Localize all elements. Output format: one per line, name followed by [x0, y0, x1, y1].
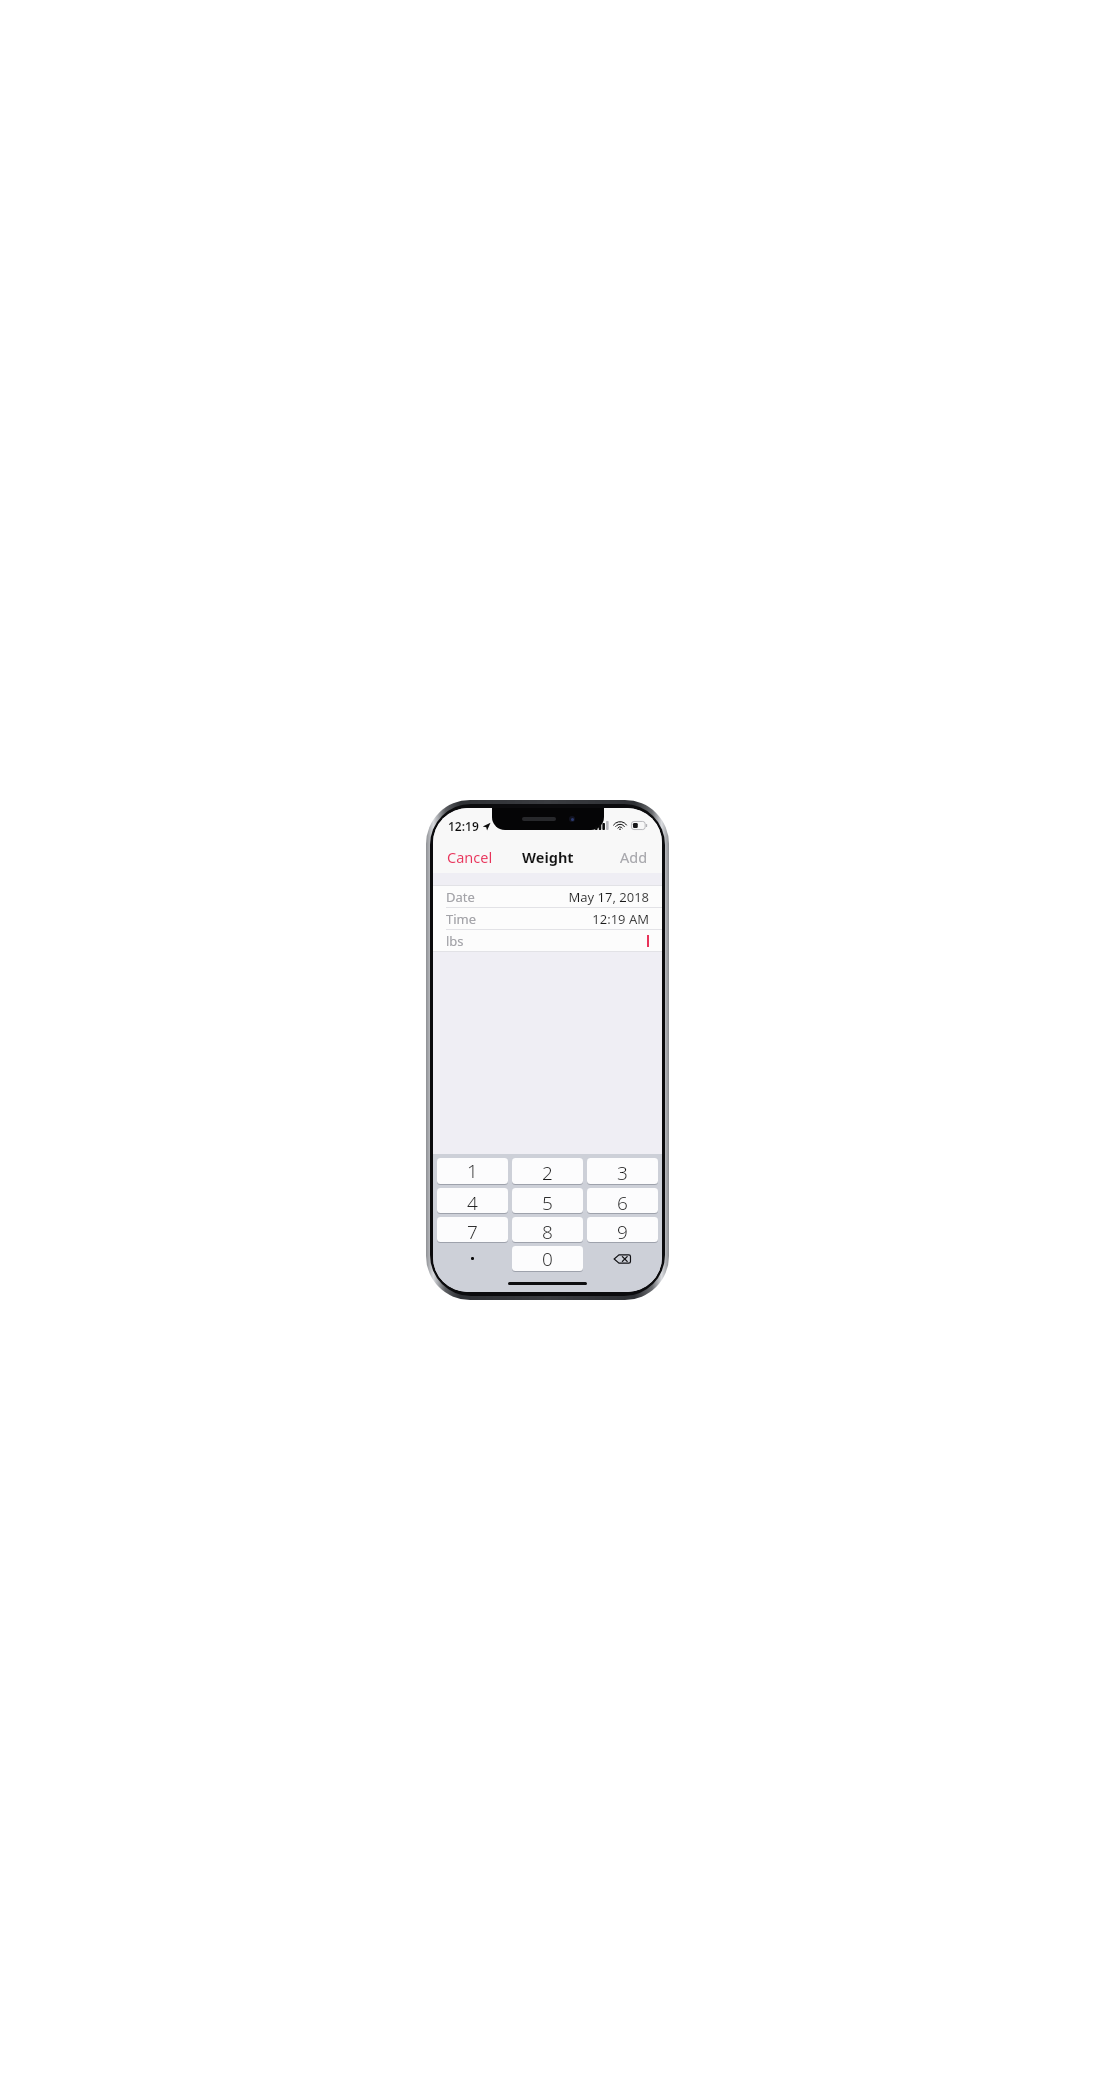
button[interactable]: Decimal point — [435, 1244, 510, 1273]
staticText: 4 — [467, 1190, 478, 1213]
button[interactable]: Date — [433, 886, 662, 908]
staticText: 9 — [617, 1219, 628, 1242]
button[interactable]: 3 — [587, 1158, 658, 1184]
button[interactable]: 6 — [587, 1188, 658, 1213]
staticText: 12:19 — [448, 818, 479, 834]
staticText: Cancel — [447, 847, 493, 867]
staticText: 3 — [617, 1160, 628, 1184]
staticText: 5 — [542, 1190, 553, 1213]
staticText: May 17, 2018 — [568, 888, 649, 906]
button[interactable]: 2 — [512, 1158, 583, 1184]
staticText: Date — [446, 888, 475, 906]
button[interactable]: Backspace — [585, 1244, 660, 1273]
button[interactable]: lbs — [433, 930, 662, 951]
button[interactable]: Add — [606, 842, 662, 872]
staticText: 0 — [542, 1246, 553, 1271]
staticText: 2 — [542, 1160, 553, 1184]
staticText: 7 — [467, 1219, 478, 1242]
button[interactable]: 9 — [587, 1217, 658, 1242]
staticText: Weight — [522, 847, 574, 867]
staticText: Time — [446, 910, 477, 928]
staticText: 6 — [617, 1190, 628, 1213]
staticText: lbs — [446, 932, 464, 950]
button[interactable]: 0 — [512, 1246, 583, 1271]
staticText: 12:19 AM — [592, 910, 649, 928]
staticText: Add — [620, 847, 648, 867]
staticText: 8 — [542, 1219, 553, 1242]
staticText: 1 — [467, 1158, 478, 1184]
button[interactable]: Time — [433, 908, 662, 930]
button[interactable]: 1 — [437, 1158, 508, 1184]
button[interactable]: 7 — [437, 1217, 508, 1242]
button[interactable]: 5 — [512, 1188, 583, 1213]
button[interactable]: 4 — [437, 1188, 508, 1213]
button[interactable]: 8 — [512, 1217, 583, 1242]
button[interactable]: Cancel — [433, 842, 507, 872]
